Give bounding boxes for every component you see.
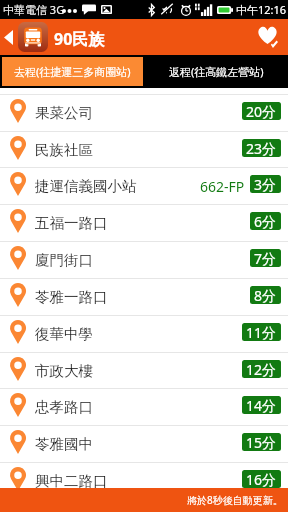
staticText: 中華電信 3G [3, 2, 65, 17]
button[interactable]: 廈門街口 [0, 242, 288, 278]
staticText: 6分 [254, 212, 277, 230]
button[interactable]: 返程(往高鐵左營站) [144, 57, 288, 86]
staticText: 14分 [246, 396, 277, 414]
button[interactable]: 苓雅一路口 [0, 279, 288, 315]
staticText: 15分 [246, 433, 277, 451]
staticText: 12分 [246, 360, 277, 378]
staticText: 8分 [254, 286, 277, 304]
staticText: 民族社區 [35, 141, 93, 159]
button[interactable]: 復華中學 [0, 316, 288, 352]
button[interactable]: 五福一路口 [0, 205, 288, 241]
button[interactable]: 苓雅國中 [0, 426, 288, 462]
staticText: 忠孝路口 [35, 398, 93, 416]
staticText: 7分 [254, 249, 277, 267]
staticText: 復華中學 [35, 325, 93, 343]
staticText: 果菜公司 [35, 104, 93, 122]
button[interactable]: 興中二路口 [0, 463, 288, 499]
staticText: 將於8秒後自動更新。 [187, 493, 283, 507]
staticText: 苓雅一路口 [35, 288, 108, 306]
staticText: 16分 [246, 470, 277, 488]
button[interactable]: Back [0, 19, 17, 55]
staticText: 20分 [246, 102, 277, 120]
button[interactable]: 去程(往捷運三多商圈站) [2, 57, 143, 86]
button[interactable]: 忠孝路口 [0, 389, 288, 425]
staticText: 11分 [246, 323, 277, 341]
staticText: 捷運信義國小站 [35, 177, 137, 195]
button[interactable]: 民族社區 [0, 132, 288, 167]
button[interactable]: 捷運信義國小站 [0, 168, 288, 204]
staticText: 苓雅國中 [35, 435, 93, 453]
staticText: 五福一路口 [35, 214, 108, 232]
staticText: 廈門街口 [35, 251, 93, 269]
staticText: 返程(往高鐵左營站) [169, 64, 264, 79]
staticText: 去程(往捷運三多商圈站) [14, 64, 131, 79]
staticText: 23分 [246, 139, 277, 157]
button[interactable]: 市政大樓 [0, 353, 288, 388]
button[interactable]: 果菜公司 [0, 95, 288, 131]
staticText: 市政大樓 [35, 362, 93, 380]
staticText: 90民族 [54, 28, 105, 50]
staticText: 中午12:16 [236, 2, 287, 17]
button[interactable]: Favorite [246, 19, 288, 55]
staticText: 3分 [254, 175, 277, 193]
staticText: 662-FP [200, 177, 245, 196]
staticText: 興中二路口 [35, 472, 108, 490]
